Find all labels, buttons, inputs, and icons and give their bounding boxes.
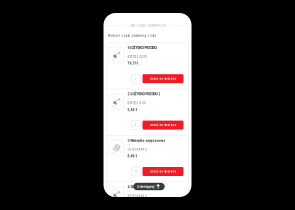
staticText: 79,31 € <box>127 62 138 65</box>
button[interactable]: Udostępnij <box>133 183 165 190</box>
staticText: (1) <box>127 190 130 193</box>
staticText: 2 ŁOŻYSKO PRZODU 2 <box>127 92 160 96</box>
button[interactable]: Dodaj do koszyka <box>142 167 183 176</box>
staticText: 50 81 0444 0 <box>127 194 147 198</box>
staticText: 1 <box>135 124 136 126</box>
staticText: 4 ŚRUBA <box>127 185 140 189</box>
button[interactable]: 1 <box>131 74 140 83</box>
staticText: 8741123 6 00 <box>127 101 146 105</box>
staticText: Lista części zamiennych <box>128 24 166 27</box>
staticText: 3 Nakrętka sprężynowa <box>127 139 165 142</box>
staticText: (1) <box>127 144 130 147</box>
staticText: Dodaj do koszyka <box>149 123 176 127</box>
staticText: 8741123 0035 <box>127 55 147 59</box>
staticText: Dodaj do koszyka <box>149 77 176 80</box>
staticText: 5,44 € <box>127 108 137 112</box>
staticText: Dodaj do koszyka <box>149 170 176 173</box>
staticText: (1) <box>127 97 130 100</box>
staticText: 50 81 0444 0 <box>127 148 147 151</box>
staticText: (1) <box>127 51 130 54</box>
staticText: 1 <box>135 77 136 80</box>
staticText: Udostępnij <box>136 184 154 189</box>
staticText: 1 ŁOŻYSKO PRZODU <box>127 46 156 50</box>
button[interactable]: 1 <box>131 121 140 130</box>
button[interactable]: 2 <box>131 167 140 176</box>
button[interactable]: Dodaj do koszyka <box>142 74 183 83</box>
staticText: 2 <box>135 170 136 173</box>
staticText: Wybierz część zamienną z listy <box>107 34 156 37</box>
staticText: 8,48 € <box>127 154 137 158</box>
button[interactable]: Dodaj do koszyka <box>142 121 183 130</box>
